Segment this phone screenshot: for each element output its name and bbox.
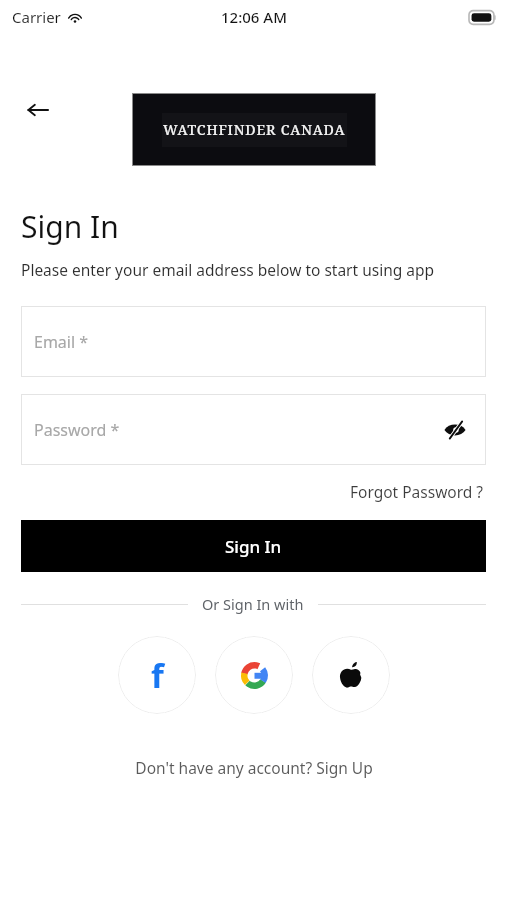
- staticText: WATCHFINDER CANADA: [163, 120, 346, 139]
- button[interactable]: Email *: [21, 306, 486, 377]
- button[interactable]: Don't have any account? Sign Up: [127, 751, 381, 784]
- staticText: Or Sign In with: [202, 594, 304, 614]
- button[interactable]: Forgot Password ?: [348, 477, 486, 506]
- staticText: Don't have any account? Sign Up: [135, 757, 373, 778]
- button[interactable]: Sign in with Apple: [312, 636, 390, 714]
- button[interactable]: Sign In: [21, 520, 486, 572]
- staticText: Password *: [34, 419, 120, 441]
- staticText: Sign In: [21, 206, 119, 247]
- staticText: Forgot Password ?: [350, 481, 484, 502]
- staticText: Sign In: [225, 535, 282, 558]
- staticText: 12:06 AM: [221, 7, 287, 27]
- staticText: Email *: [34, 331, 89, 353]
- staticText: Please enter your email address below to…: [21, 259, 435, 280]
- staticText: Carrier: [12, 7, 61, 27]
- button[interactable]: Password *: [21, 394, 486, 465]
- button[interactable]: Show password: [437, 412, 473, 448]
- button[interactable]: Back: [16, 88, 60, 132]
- staticText: f: [151, 653, 164, 698]
- button[interactable]: Sign in with Google: [215, 636, 293, 714]
- button[interactable]: Sign in with Facebook: [118, 636, 196, 714]
